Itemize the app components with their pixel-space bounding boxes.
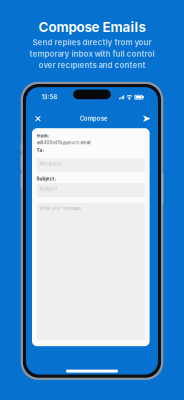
button[interactable]: Send <box>143 114 151 123</box>
staticText: Subject: <box>37 176 56 182</box>
staticText: over recipients and content <box>38 60 145 70</box>
staticText: temporary inbox with full control <box>29 49 154 59</box>
staticText: Compose <box>80 115 107 122</box>
staticText: 13:56 <box>41 94 57 101</box>
staticText: Write your message <box>39 206 81 211</box>
staticText: Send replies directly from your <box>32 38 151 47</box>
button[interactable]: Close <box>33 114 43 123</box>
staticText: To: <box>37 148 44 153</box>
staticText: Compose Emails <box>38 19 145 35</box>
staticText: Recipient <box>39 161 60 166</box>
staticText: Subject <box>39 186 56 191</box>
staticText: ae8409cd1b@yourn.email <box>37 140 91 145</box>
staticText: From: <box>37 133 49 139</box>
